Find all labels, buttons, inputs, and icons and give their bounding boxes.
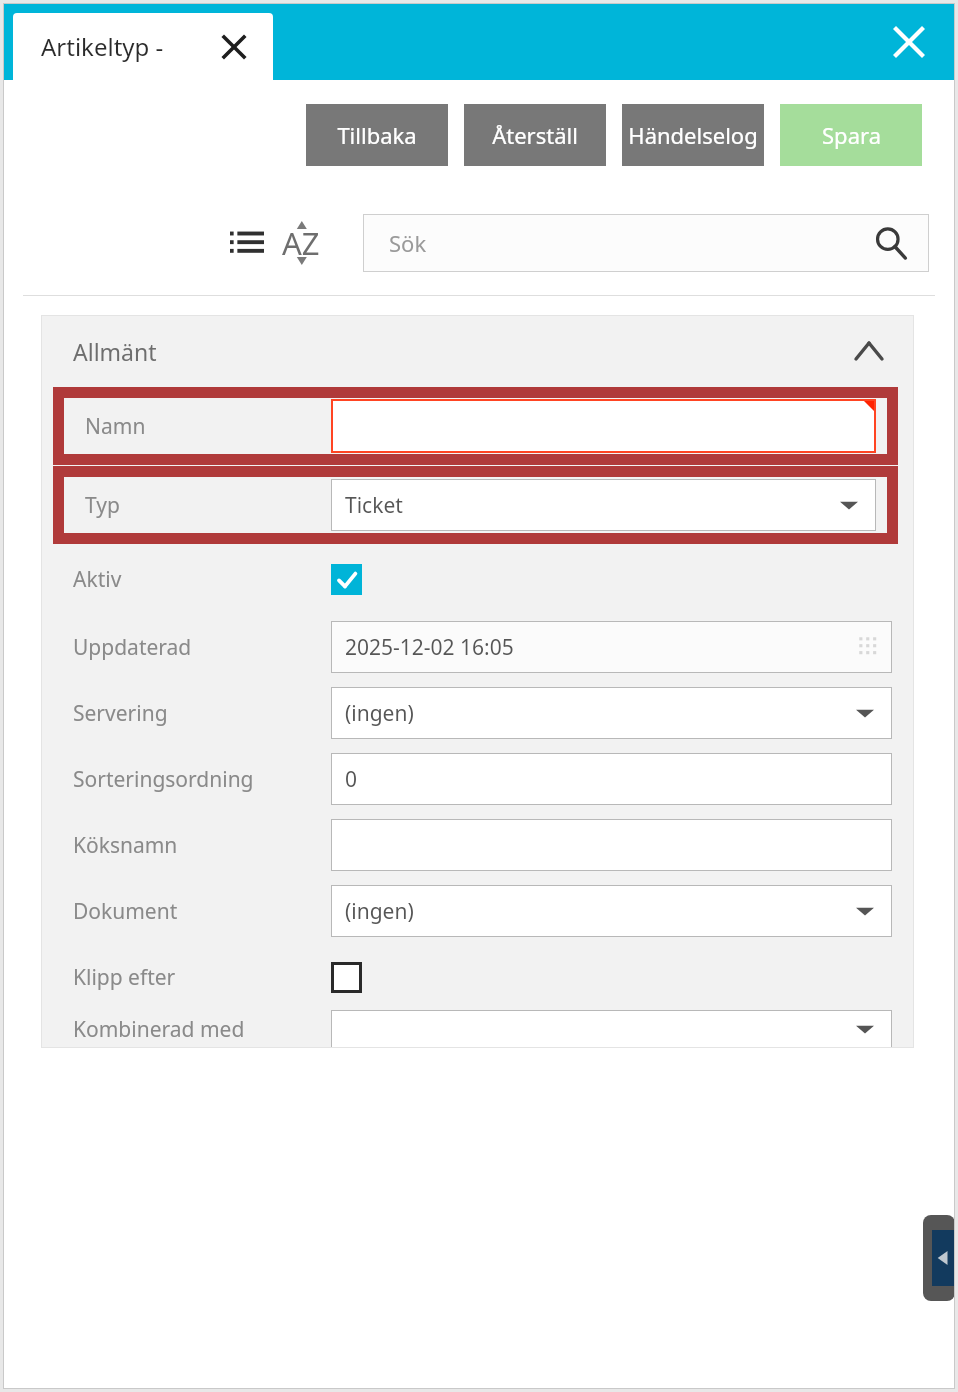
button[interactable] (331, 399, 876, 453)
staticText: Ticket (345, 491, 403, 520)
staticText: Aktiv (73, 565, 122, 594)
button[interactable]: 2025-12-02 16:05 (331, 621, 892, 673)
staticText: Uppdaterad (73, 633, 192, 662)
staticText: Namn (85, 412, 146, 441)
staticText: Sorteringsordning (73, 765, 254, 794)
staticText: 2025-12-02 16:05 (345, 633, 514, 662)
staticText: Klipp efter (73, 963, 176, 992)
button[interactable] (331, 819, 892, 871)
staticText: 0 (345, 765, 358, 794)
button[interactable]: Close tab (217, 30, 251, 64)
staticText: Servering (73, 699, 168, 728)
button[interactable]: List view (225, 221, 269, 265)
button[interactable]: Spara (780, 104, 922, 166)
button[interactable]: Händelselogg (622, 104, 764, 166)
button[interactable] (331, 1010, 892, 1048)
button[interactable]: Aktiv checkbox (331, 564, 362, 595)
staticText: Artikeltyp - (41, 30, 164, 63)
button[interactable]: Återställ (464, 104, 606, 166)
button[interactable]: Allmänt (41, 315, 914, 387)
button[interactable]: Open side panel (923, 1215, 955, 1301)
button[interactable]: 0 (331, 753, 892, 805)
button[interactable]: (ingen) (331, 687, 892, 739)
button[interactable]: Sort A to Z (275, 217, 327, 269)
staticText: Allmänt (73, 336, 157, 367)
button[interactable]: Tillbaka (306, 104, 448, 166)
button[interactable]: Klipp efter checkbox (331, 962, 362, 993)
button[interactable]: Artikeltyp - (13, 13, 273, 80)
button[interactable]: (ingen) (331, 885, 892, 937)
staticText: Dokument (73, 897, 178, 926)
staticText: Händelselogg (622, 120, 764, 150)
staticText: Kombinerad med (73, 1015, 245, 1044)
button[interactable]: Close (885, 18, 933, 66)
staticText: Tillbaka (337, 120, 417, 150)
staticText: Spara (822, 120, 881, 150)
staticText: Återställ (492, 120, 578, 150)
button[interactable]: Ticket (331, 479, 876, 531)
staticText: AZ (282, 222, 320, 264)
staticText: Köksnamn (73, 831, 178, 860)
staticText: (ingen) (345, 897, 414, 926)
staticText: Sök (389, 228, 427, 258)
staticText: Typ (85, 491, 120, 520)
staticText: (ingen) (345, 699, 414, 728)
button[interactable]: Sök (363, 214, 929, 272)
